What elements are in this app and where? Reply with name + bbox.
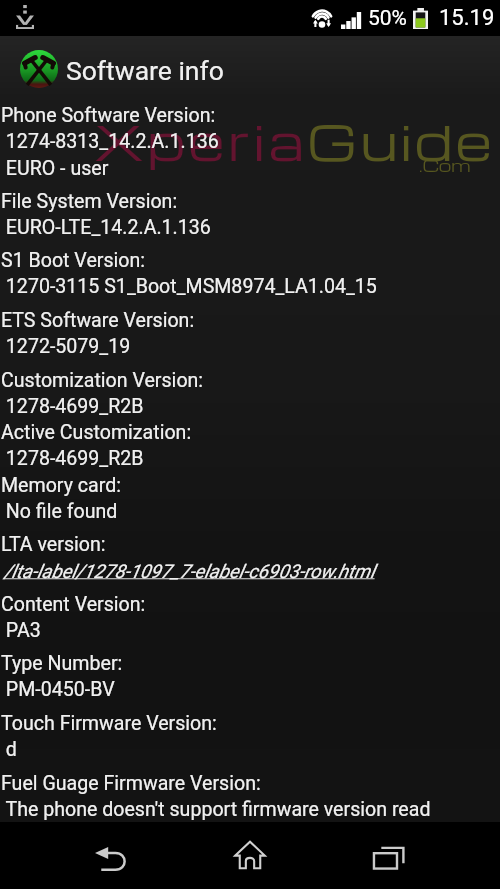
staticText: 1278-4699_R2B bbox=[1, 447, 144, 470]
button[interactable]: LTA version: bbox=[0, 533, 500, 586]
staticText: Memory card: bbox=[1, 474, 121, 497]
staticText: ETS Software Version: bbox=[1, 309, 195, 332]
button[interactable]: Memory card: bbox=[0, 474, 500, 527]
button[interactable]: Fuel Guage Firmware Version: bbox=[0, 772, 500, 825]
staticText: 15.19 bbox=[439, 5, 495, 31]
staticText: PM-0450-BV bbox=[1, 678, 115, 701]
button[interactable]: Touch Firmware Version: bbox=[0, 712, 500, 765]
staticText: PA3 bbox=[1, 619, 41, 642]
staticText: Fuel Guage Firmware Version: bbox=[1, 772, 261, 795]
staticText: LTA version: bbox=[1, 533, 106, 556]
button[interactable]: Customization Version: bbox=[0, 369, 500, 422]
staticText: 1278-4699_R2B bbox=[1, 395, 144, 418]
staticText: EURO - user bbox=[1, 157, 109, 180]
staticText: .Com bbox=[419, 153, 471, 176]
staticText: Content Version: bbox=[1, 593, 146, 616]
staticText: 1272-5079_19 bbox=[1, 335, 131, 358]
staticText: Type Number: bbox=[1, 652, 123, 675]
staticText: Active Customization: bbox=[1, 421, 192, 444]
staticText: XperiaGuide bbox=[94, 107, 496, 174]
button[interactable]: Back bbox=[70, 837, 152, 881]
staticText: The phone doesn't support firmware versi… bbox=[1, 798, 431, 821]
button[interactable]: Content Version: bbox=[0, 593, 500, 646]
staticText: Phone Software Version: bbox=[1, 104, 216, 127]
button[interactable]: Active Customization: bbox=[0, 421, 500, 474]
staticText: Software info bbox=[66, 55, 224, 86]
staticText: 1274-8313_14.2.A.1.136 bbox=[1, 130, 219, 153]
button[interactable]: ETS Software Version: bbox=[0, 309, 500, 362]
staticText: Touch Firmware Version: bbox=[1, 712, 217, 735]
staticText: Customization Version: bbox=[1, 369, 204, 392]
button[interactable]: File System Version: bbox=[0, 190, 500, 243]
button[interactable]: S1 Boot Version: bbox=[0, 249, 500, 302]
staticText: EURO-LTE_14.2.A.1.136 bbox=[1, 216, 211, 239]
button[interactable]: Recent apps bbox=[348, 837, 430, 879]
button[interactable]: Phone Software Version: bbox=[0, 104, 500, 183]
staticText: /lta-label/1278-1097_7-elabel-c6903-row.… bbox=[4, 560, 375, 582]
staticText: 50% bbox=[368, 6, 407, 31]
staticText: No file found bbox=[1, 500, 118, 523]
staticText: File System Version: bbox=[1, 190, 178, 213]
staticText: S1 Boot Version: bbox=[1, 249, 146, 272]
button[interactable]: Home bbox=[209, 830, 291, 880]
staticText: d bbox=[1, 738, 17, 761]
button[interactable]: Type Number: bbox=[0, 652, 500, 705]
staticText: 1270-3115 S1_Boot_MSM8974_LA1.04_15 bbox=[1, 275, 377, 298]
